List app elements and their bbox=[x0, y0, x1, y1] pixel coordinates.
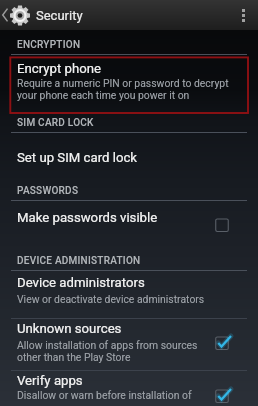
staticText: Set up SIM card lock bbox=[17, 150, 138, 165]
staticText: Allow installation of apps from sources … bbox=[17, 339, 198, 364]
staticText: Encrypt phone bbox=[17, 61, 101, 76]
staticText: View or deactivate device administrators bbox=[17, 293, 205, 305]
button[interactable] bbox=[0, 319, 258, 370]
staticText: Device administrators bbox=[17, 275, 145, 290]
staticText: SIM CARD LOCK bbox=[17, 117, 94, 129]
button[interactable]: Navigate up bbox=[0, 0, 31, 30]
staticText: Make passwords visible bbox=[17, 210, 158, 225]
button[interactable] bbox=[0, 271, 258, 318]
button[interactable] bbox=[0, 371, 258, 406]
button[interactable] bbox=[0, 55, 258, 112]
button[interactable] bbox=[0, 133, 258, 180]
staticText: Disallow or warn before installation of bbox=[17, 389, 192, 401]
staticText: PASSWORDS bbox=[17, 185, 79, 197]
staticText: Security bbox=[36, 8, 83, 23]
staticText: Require a numeric PIN or password to dec… bbox=[17, 77, 229, 102]
button[interactable]: More options bbox=[228, 0, 258, 30]
staticText: DEVICE ADMINISTRATION bbox=[17, 255, 141, 267]
staticText: ENCRYPTION bbox=[17, 39, 81, 51]
button[interactable]: Checked bbox=[212, 333, 232, 353]
button[interactable]: Unchecked bbox=[212, 215, 232, 235]
button[interactable]: Checked bbox=[212, 386, 232, 406]
button[interactable] bbox=[0, 201, 258, 248]
staticText: Verify apps bbox=[17, 373, 83, 388]
staticText: Unknown sources bbox=[17, 321, 122, 336]
